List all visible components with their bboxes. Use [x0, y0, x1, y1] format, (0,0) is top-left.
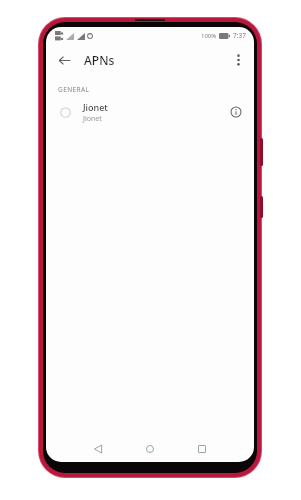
staticText: Jionet: [83, 114, 102, 124]
staticText: Jionet: [83, 101, 108, 113]
staticText: APNs: [84, 52, 115, 68]
button[interactable]: Jionet: [46, 94, 254, 130]
button[interactable]: Home: [137, 436, 163, 462]
staticText: GENERAL: [58, 85, 90, 94]
button[interactable]: Back: [85, 436, 111, 462]
button[interactable]: Recent apps: [189, 436, 215, 462]
staticText: 7:37: [233, 31, 246, 40]
button[interactable]: APN details: [224, 100, 248, 124]
staticText: 100%: [201, 32, 217, 40]
button[interactable]: More options: [225, 47, 251, 73]
button[interactable]: Back: [51, 47, 77, 73]
